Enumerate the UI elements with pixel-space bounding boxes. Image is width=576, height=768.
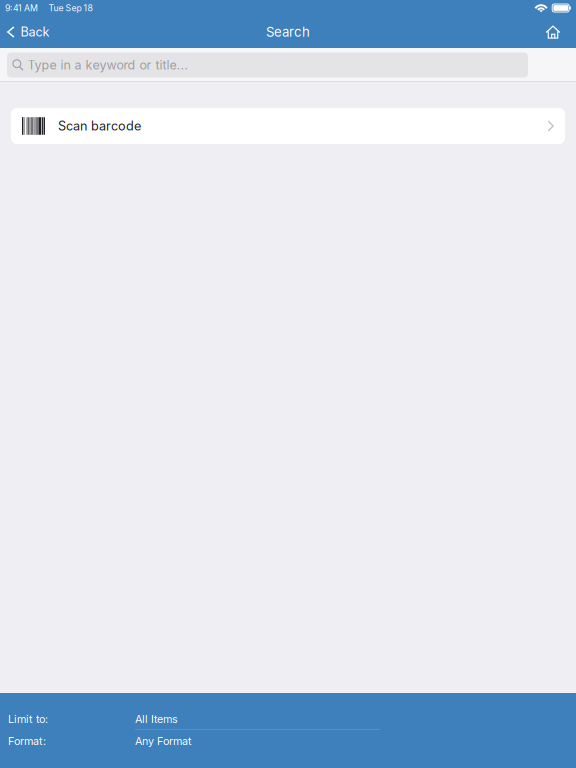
staticText: All Items — [135, 712, 178, 726]
staticText: Back — [21, 24, 50, 40]
staticText: Type in a keyword or title... — [27, 57, 188, 73]
staticText: Format: — [8, 734, 46, 748]
staticText: Limit to: — [8, 712, 48, 726]
button[interactable]: Home — [538, 16, 568, 48]
staticText: Scan barcode — [58, 118, 141, 134]
button[interactable]: All Items — [135, 708, 380, 730]
staticText: Tue Sep 18 — [48, 3, 92, 13]
button[interactable]: Type in a keyword or title... — [7, 52, 528, 77]
button[interactable]: Back — [0, 16, 59, 48]
staticText: 9:41 AM — [5, 3, 38, 13]
staticText: Search — [266, 24, 310, 40]
button[interactable]: Any Format — [135, 730, 380, 752]
button[interactable]: Scan barcode — [11, 108, 565, 144]
staticText: Any Format — [135, 734, 192, 748]
